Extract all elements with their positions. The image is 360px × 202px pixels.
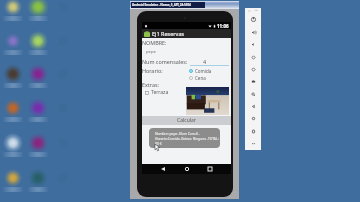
button[interactable]: Terraza	[145, 89, 169, 96]
button[interactable]: Cena	[189, 75, 206, 81]
staticText: Comida	[195, 68, 212, 74]
staticText: Android Emulator - Nexus_5_API_24:5554	[132, 3, 205, 7]
button[interactable]: Rotate right	[247, 64, 259, 75]
button[interactable]: Volume up	[247, 27, 259, 38]
staticText: Calcular	[177, 117, 196, 124]
staticText: NOMBRE:	[142, 39, 167, 46]
staticText: Extras:	[142, 81, 159, 88]
button[interactable]: Overview	[247, 126, 259, 137]
button[interactable]: Home	[181, 164, 192, 174]
button[interactable]: Calcular	[142, 116, 231, 125]
button[interactable]: Power	[247, 14, 259, 25]
button[interactable]: More	[247, 138, 259, 149]
button[interactable]: Back	[247, 101, 259, 112]
staticText: Nombre: pepe -Num Com:4 - Horario:Comida…	[155, 131, 220, 146]
staticText: Terraza	[151, 89, 169, 96]
staticText: Cena	[195, 75, 206, 81]
button[interactable]: Volume down	[247, 39, 259, 50]
staticText: Num comensales:	[142, 58, 188, 65]
staticText: 4	[203, 58, 207, 65]
button[interactable]: Comida	[189, 68, 212, 74]
button[interactable]: Zoom	[247, 89, 259, 100]
button[interactable]: Screenshot	[247, 76, 259, 87]
staticText: 11:06	[217, 23, 229, 29]
button[interactable]: Home	[247, 113, 259, 124]
button[interactable]: Back	[157, 164, 168, 174]
staticText: pepe	[146, 49, 156, 55]
button[interactable]: Rotate left	[247, 52, 259, 63]
staticText: Horario:	[142, 67, 163, 74]
staticText: Ej1 Reservas	[152, 30, 185, 37]
button[interactable]: Recents	[204, 164, 215, 174]
